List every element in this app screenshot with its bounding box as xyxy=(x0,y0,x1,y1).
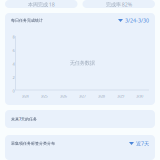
staticText: 采集项任务标签分类分布 xyxy=(11,141,55,146)
button[interactable]: 采集项任务标签分类分布 xyxy=(5,135,155,160)
staticText: 3/26 xyxy=(60,93,67,99)
staticText: 3/24-3/30 xyxy=(125,17,149,24)
staticText: 3/29 xyxy=(117,93,124,99)
staticText: 0 xyxy=(12,88,14,94)
staticText: 未来7天的任务 xyxy=(11,116,37,122)
staticText: 3/28 xyxy=(98,93,105,99)
staticText: 近7天 xyxy=(136,140,149,147)
staticText: 2 xyxy=(12,75,14,80)
staticText: 3/27 xyxy=(79,93,86,99)
button[interactable]: 未来7天的任务 xyxy=(5,110,155,128)
staticText: 完成率 82% xyxy=(106,1,132,8)
button[interactable]: 3/24-3/30 xyxy=(118,17,149,24)
staticText: 4 xyxy=(12,61,14,67)
staticText: 无任务数据 xyxy=(70,60,95,66)
button[interactable]: 完成率 82% xyxy=(82,0,155,8)
staticText: 每日任务完成统计 xyxy=(11,18,43,23)
button[interactable]: 本周完成 18 xyxy=(5,0,77,8)
staticText: 3/30 xyxy=(136,93,143,99)
staticText: 3/24 xyxy=(21,93,28,99)
staticText: 3/25 xyxy=(41,93,48,99)
staticText: 6 xyxy=(12,48,14,53)
staticText: 8 xyxy=(12,34,14,40)
staticText: 本周完成 18 xyxy=(28,1,55,8)
